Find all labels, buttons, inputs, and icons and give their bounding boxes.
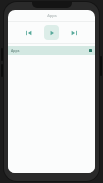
- staticText: Apps: [47, 13, 57, 18]
- button[interactable]: Previous track: [22, 26, 36, 40]
- button[interactable]: Apps: [8, 46, 95, 55]
- button[interactable]: Next track: [67, 26, 81, 40]
- button[interactable]: Play: [44, 25, 59, 40]
- other: Status indicator: [89, 49, 92, 52]
- staticText: Apps: [11, 48, 20, 53]
